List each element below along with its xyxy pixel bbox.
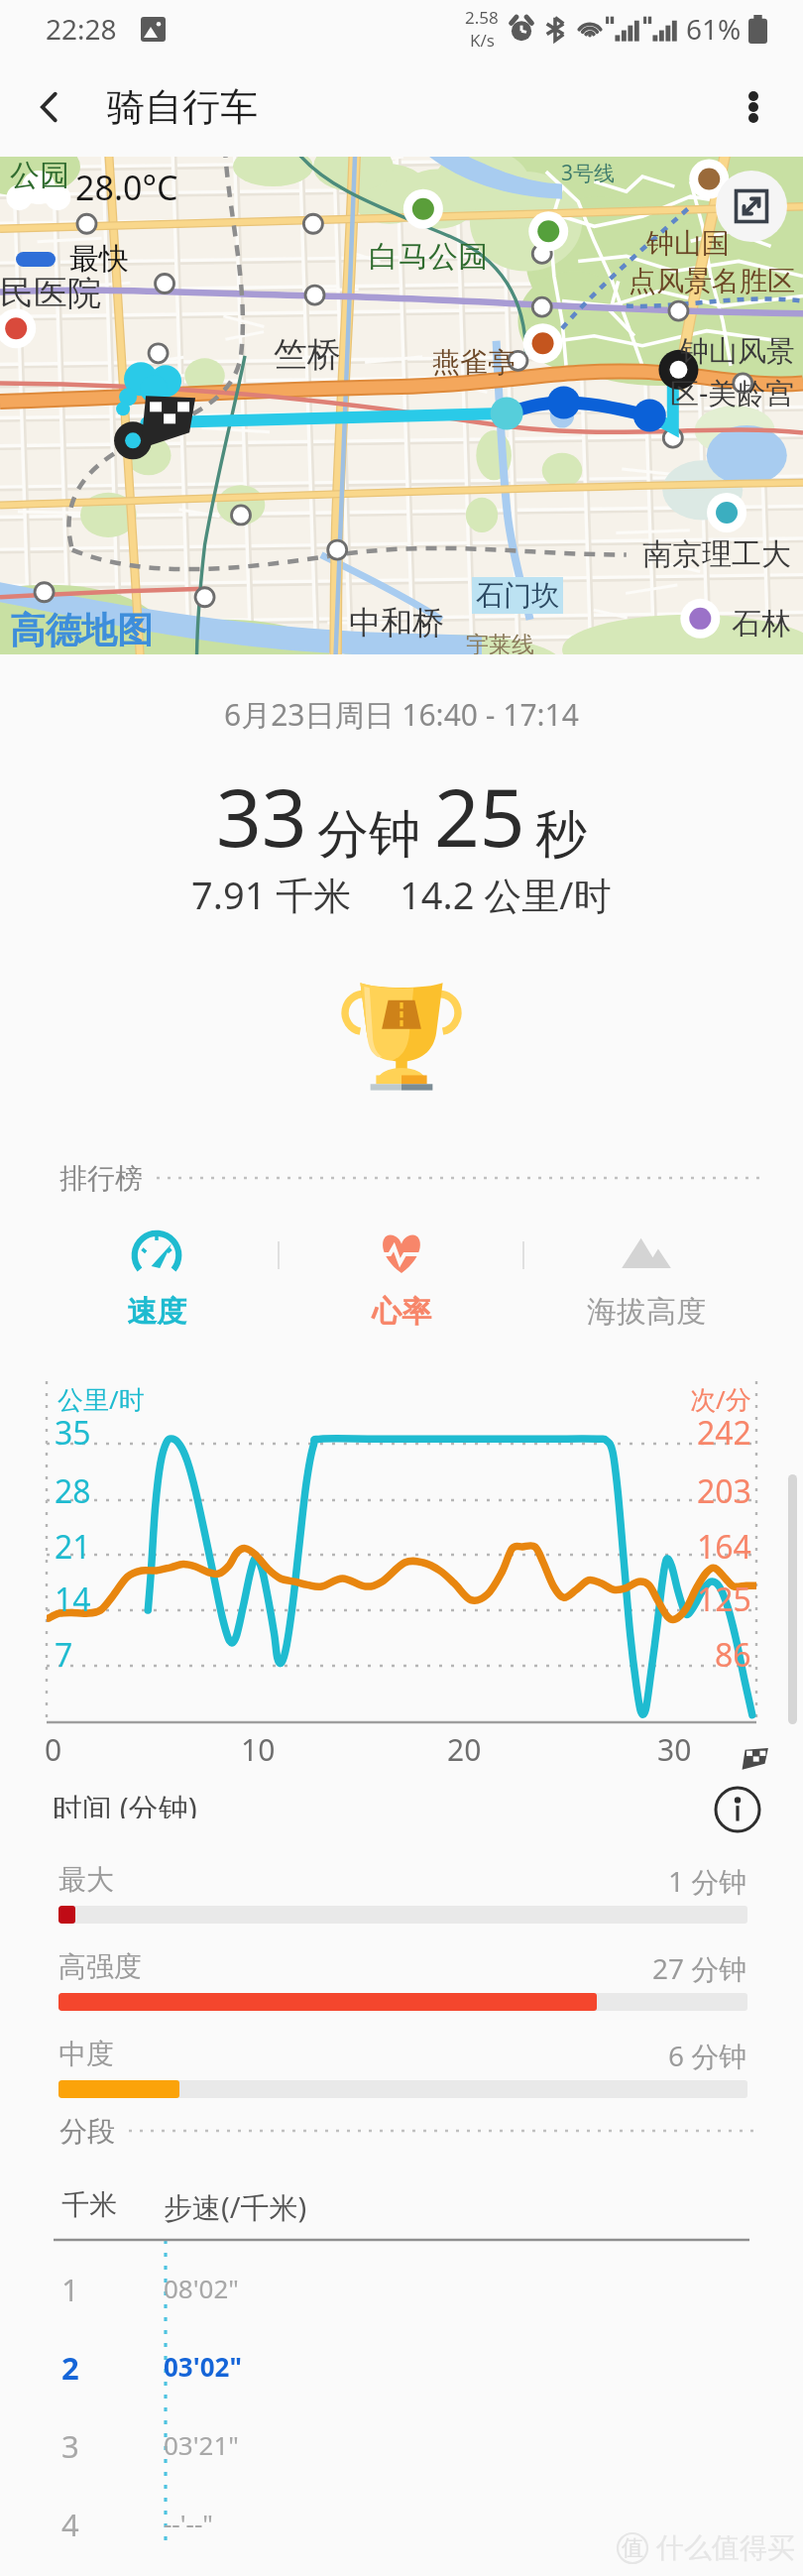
staticText: 25 [434, 761, 525, 870]
staticText: 区-美龄宫 [670, 373, 795, 412]
staticText: 14 [55, 1578, 91, 1621]
staticText: 心率 [372, 1293, 431, 1331]
staticText: 千米 [61, 2187, 164, 2222]
staticText: 钟山国 [646, 226, 730, 261]
staticText: 125 [697, 1578, 751, 1621]
staticText: 步速(/千米) [164, 2187, 307, 2227]
staticText: 高强度 [58, 1949, 142, 1984]
staticText: 中和桥 [349, 603, 444, 643]
staticText: 27 分钟 [652, 1949, 747, 1987]
staticText: 白马公园 [369, 238, 488, 276]
staticText: 最大 [58, 1862, 114, 1897]
staticText: 分钟 [317, 802, 420, 868]
button[interactable]: 速度 [36, 1228, 278, 1331]
button[interactable]: 心率 [280, 1228, 522, 1331]
button[interactable]: Back [18, 75, 81, 139]
staticText: 7 [55, 1633, 73, 1677]
staticText: 28.0°C [75, 165, 178, 210]
staticText: 61% [686, 10, 742, 48]
staticText: --'--" [164, 2506, 213, 2540]
button[interactable]: 3 [0, 2425, 803, 2504]
staticText: 3号线 [561, 159, 616, 187]
staticText: 最快 [69, 240, 129, 278]
staticText: 秒 [535, 802, 587, 868]
staticText: 10 [241, 1729, 276, 1770]
staticText: 公里/时 [57, 1381, 145, 1417]
staticText: 值 [622, 2534, 643, 2562]
staticText: 2 [61, 2347, 164, 2389]
staticText: 0 [45, 1729, 62, 1770]
staticText: 22:28 [46, 10, 117, 48]
button[interactable]: Expand map [716, 171, 787, 242]
staticText: 公园 [10, 157, 69, 194]
staticText: 什么值得买 [656, 2530, 795, 2565]
staticText: 20 [447, 1729, 482, 1770]
button[interactable]: 4 [0, 2504, 803, 2548]
staticText: 14.2 公里/时 [400, 869, 612, 920]
staticText: 7.91 千米 [191, 869, 352, 920]
staticText: 骑自行车 [107, 83, 258, 131]
staticText: 速度 [127, 1293, 186, 1331]
staticText: 民医院 [0, 272, 101, 314]
staticText: 点风景名胜区 [629, 264, 795, 298]
staticText: 28 [55, 1469, 91, 1513]
staticText: 6 分钟 [668, 2037, 747, 2074]
staticText: 南京理工大 [642, 535, 791, 573]
staticText: 钟山风景 [680, 333, 795, 370]
staticText: 6月23日周日 16:40 - 17:14 [224, 694, 579, 735]
staticText: 燕雀亭 [432, 345, 516, 380]
staticText: 86 [715, 1633, 751, 1677]
staticText: 分段 [59, 2114, 115, 2149]
staticText: 3 [61, 2425, 164, 2467]
staticText: K/s [470, 29, 495, 52]
staticText: 08'02" [164, 2271, 239, 2305]
staticText: 排行榜 [59, 1161, 143, 1196]
staticText: 次/分 [690, 1381, 751, 1417]
staticText: 21 [55, 1525, 91, 1569]
staticText: 竺桥 [274, 333, 341, 376]
staticText: 2.58 [465, 6, 499, 29]
staticText: 203 [697, 1469, 751, 1513]
button[interactable]: Info [712, 1784, 763, 1835]
staticText: 1 [61, 2269, 164, 2310]
staticText: 164 [697, 1525, 751, 1569]
staticText: 高德地图 [10, 608, 153, 652]
button[interactable]: 1 [0, 2269, 803, 2347]
staticText: 30 [657, 1729, 692, 1770]
staticText: 时间 (分钟) [53, 1788, 197, 1818]
staticText: 35 [55, 1411, 91, 1455]
button[interactable]: 海拔高度 [524, 1228, 767, 1331]
button[interactable]: More options [722, 75, 785, 139]
staticText: 海拔高度 [587, 1293, 706, 1331]
staticText: 宇莱线 [466, 631, 534, 654]
staticText: 1 分钟 [668, 1862, 747, 1900]
staticText: 242 [697, 1411, 751, 1455]
button[interactable]: 2 [0, 2347, 803, 2425]
staticText: 中度 [58, 2037, 114, 2071]
staticText: 33 [216, 761, 307, 870]
staticText: 03'02" [164, 2349, 242, 2384]
staticText: 石门坎 [476, 578, 559, 613]
staticText: 4 [61, 2504, 164, 2545]
staticText: 石林 [732, 605, 791, 643]
staticText: 03'21" [164, 2427, 239, 2462]
